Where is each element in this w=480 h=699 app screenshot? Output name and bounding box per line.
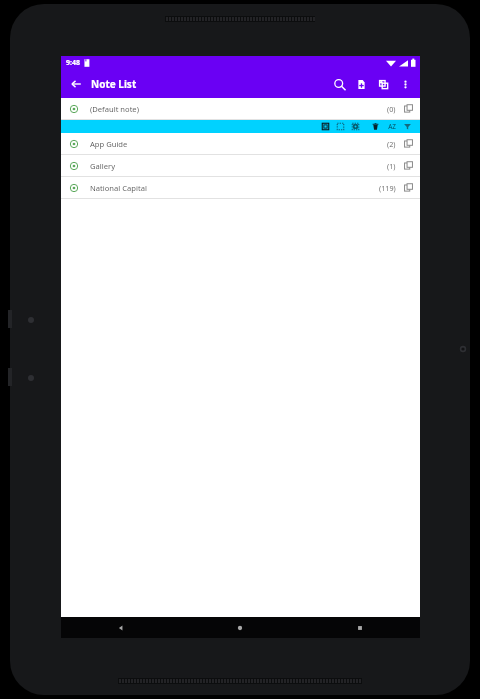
button[interactable]: National Capital: [61, 177, 420, 198]
button[interactable]: Sort A to Z: [383, 120, 400, 133]
staticText: AZ: [388, 122, 396, 131]
button[interactable]: Invert selection: [348, 120, 363, 133]
button[interactable]: Gallery: [61, 155, 420, 176]
staticText: (Default note): [90, 104, 387, 114]
staticText: 9:48: [66, 58, 80, 68]
button[interactable]: Filter: [400, 120, 415, 133]
button[interactable]: (Default note): [61, 98, 420, 119]
button[interactable]: Search: [328, 70, 350, 98]
button[interactable]: Delete: [368, 120, 383, 133]
staticText: (119): [379, 183, 396, 193]
button[interactable]: Duplicate National Capital: [396, 177, 420, 198]
button[interactable]: Duplicate Gallery: [396, 155, 420, 176]
staticText: App Guide: [90, 139, 387, 149]
button[interactable]: Deselect all: [333, 120, 348, 133]
staticText: (2): [387, 139, 396, 149]
staticText: (0): [387, 104, 396, 114]
button[interactable]: Duplicate (Default note): [396, 98, 420, 119]
button[interactable]: More options: [394, 70, 416, 98]
button[interactable]: Back: [61, 70, 91, 98]
staticText: (1): [387, 161, 396, 171]
button[interactable]: Back: [61, 617, 180, 638]
button[interactable]: Home: [180, 617, 300, 638]
staticText: National Capital: [90, 183, 379, 193]
button[interactable]: Duplicate App Guide: [396, 133, 420, 154]
staticText: Note List: [91, 77, 137, 91]
button[interactable]: New note: [350, 70, 372, 98]
button[interactable]: App Guide: [61, 133, 420, 154]
staticText: Gallery: [90, 161, 387, 171]
button[interactable]: Select all: [318, 120, 333, 133]
button[interactable]: Recent apps: [300, 617, 420, 638]
button[interactable]: Layers: [372, 70, 394, 98]
